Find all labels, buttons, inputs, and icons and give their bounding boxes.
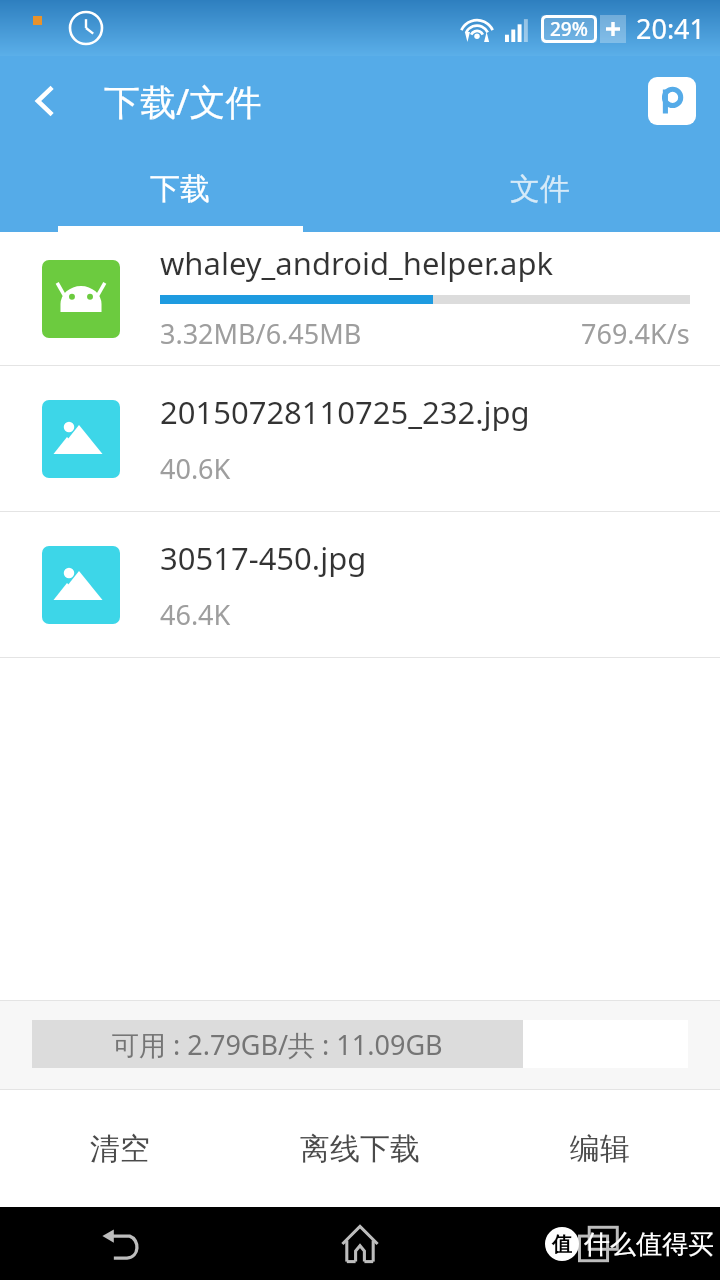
staticText: 值: [552, 1232, 572, 1257]
button[interactable]: 下载: [0, 146, 360, 232]
button[interactable]: 离线下载: [240, 1090, 480, 1207]
staticText: 清空: [90, 1130, 150, 1168]
staticText: 文件: [510, 170, 570, 208]
staticText: 40.6K: [160, 450, 231, 487]
button[interactable]: 清空: [0, 1090, 240, 1207]
button[interactable]: 20150728110725_232.jpg: [0, 366, 720, 511]
staticText: 769.4K/s: [581, 315, 690, 352]
staticText: 可用 : 2.79GB/共 : 11.09GB: [112, 1026, 443, 1063]
staticText: 编辑: [570, 1130, 630, 1168]
staticText: 29%: [550, 16, 588, 42]
staticText: 46.4K: [160, 596, 231, 633]
button[interactable]: Home: [240, 1207, 480, 1280]
button[interactable]: Back: [14, 69, 78, 133]
staticText: 下载/文件: [104, 77, 262, 126]
button[interactable]: Recent apps: [480, 1207, 720, 1280]
staticText: 20:41: [636, 10, 706, 47]
staticText: 下载: [150, 170, 210, 208]
staticText: 20150728110725_232.jpg: [160, 391, 530, 433]
staticText: 什么值得买: [584, 1228, 714, 1261]
staticText: whaley_android_helper.apk: [160, 242, 554, 284]
staticText: 离线下载: [300, 1130, 420, 1168]
staticText: 3.32MB/6.45MB: [160, 315, 362, 352]
button[interactable]: 30517-450.jpg: [0, 512, 720, 657]
button[interactable]: 文件: [360, 146, 720, 232]
button[interactable]: App logo: [646, 75, 698, 127]
button[interactable]: whaley_android_helper.apk: [0, 232, 720, 365]
button[interactable]: Back: [0, 1207, 240, 1280]
staticText: 30517-450.jpg: [160, 537, 367, 579]
button[interactable]: 编辑: [480, 1090, 720, 1207]
